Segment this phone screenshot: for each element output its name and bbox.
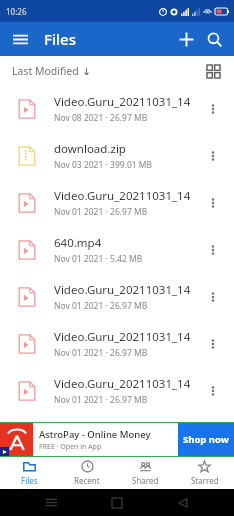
staticText: FREE · Open in App bbox=[39, 442, 102, 452]
button[interactable]: AstroPay - Online Money Wallet bbox=[0, 423, 234, 456]
staticText: Files bbox=[44, 29, 76, 49]
staticText: Files bbox=[21, 475, 38, 486]
staticText: Video.Guru_20211031_145030 bbox=[54, 282, 194, 298]
button[interactable]: More options bbox=[198, 329, 228, 359]
button[interactable]: download.zip bbox=[0, 132, 234, 179]
staticText: 10:26 bbox=[6, 6, 27, 17]
button[interactable]: Video.Guru_20211031_145030 bbox=[0, 273, 234, 320]
button[interactable]: Back bbox=[168, 489, 198, 516]
staticText: AstroPay - Online Money Wallet bbox=[39, 428, 174, 441]
button[interactable]: Search bbox=[200, 25, 228, 53]
button[interactable]: 640.mp4 bbox=[0, 226, 234, 273]
button[interactable]: Recent apps bbox=[36, 489, 66, 516]
button[interactable]: Video.Guru_20211031_145030 bbox=[0, 320, 234, 367]
staticText: Video.Guru_20211031_145030 bbox=[54, 376, 194, 392]
button[interactable]: Starred bbox=[175, 457, 234, 489]
button[interactable]: Recent bbox=[58, 457, 116, 489]
staticText: download.zip bbox=[54, 141, 126, 157]
button[interactable]: More options bbox=[198, 188, 228, 218]
staticText: Nov 01 2021 · 26.97 MB bbox=[54, 206, 148, 218]
button[interactable]: Switch to grid view bbox=[200, 58, 226, 84]
staticText: Nov 08 2021 · 26.97 MB bbox=[54, 112, 148, 124]
button[interactable]: Open navigation menu bbox=[8, 27, 32, 51]
staticText: Video.Guru_20211031_145030 bbox=[54, 188, 194, 204]
button[interactable]: Home bbox=[102, 489, 132, 516]
staticText: Recent bbox=[74, 475, 100, 486]
button[interactable]: Last Modified bbox=[10, 61, 93, 81]
staticText: Nov 01 2021 · 26.97 MB bbox=[54, 300, 148, 312]
button[interactable]: More options bbox=[198, 235, 228, 265]
button[interactable]: Shared bbox=[116, 457, 175, 489]
staticText: Nov 03 2021 · 399.01 MB bbox=[54, 159, 153, 171]
button[interactable]: Shop now bbox=[178, 423, 234, 456]
staticText: 640.mp4 bbox=[54, 235, 102, 251]
staticText: Last Modified bbox=[12, 64, 79, 78]
button[interactable]: Add bbox=[172, 25, 200, 53]
staticText: Nov 01 2021 · 26.97 MB bbox=[54, 394, 148, 406]
staticText: Shared bbox=[132, 475, 159, 486]
button[interactable]: More options bbox=[198, 282, 228, 312]
button[interactable]: More options bbox=[198, 376, 228, 406]
staticText: Nov 01 2021 · 5.42 MB bbox=[54, 253, 143, 265]
staticText: Nov 01 2021 · 26.97 MB bbox=[54, 347, 148, 359]
staticText: Video.Guru_20211031_145030 bbox=[54, 94, 194, 110]
staticText: Starred bbox=[191, 475, 219, 486]
button[interactable]: Video.Guru_20211031_145030 bbox=[0, 179, 234, 226]
button[interactable]: Files bbox=[0, 457, 58, 489]
staticText: Shop now bbox=[183, 433, 229, 446]
button[interactable]: Video.Guru_20211031_145030 bbox=[0, 85, 234, 132]
staticText: Video.Guru_20211031_145030 bbox=[54, 329, 194, 345]
button[interactable]: More options bbox=[198, 141, 228, 171]
button[interactable]: Video.Guru_20211031_145030 bbox=[0, 367, 234, 414]
button[interactable]: More options bbox=[198, 94, 228, 124]
